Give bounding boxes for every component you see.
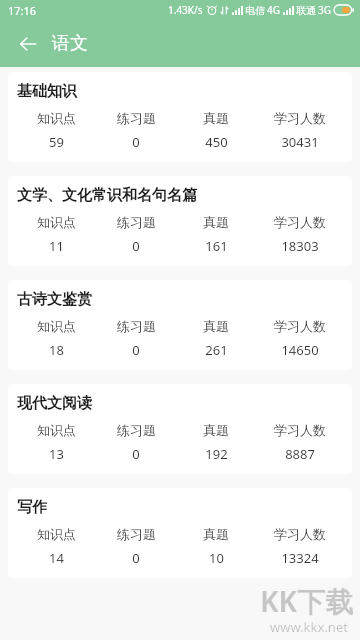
- staticText: 0: [132, 445, 140, 463]
- staticText: 知识点: [37, 526, 76, 542]
- staticText: 4G: [267, 3, 280, 17]
- staticText: 真题: [203, 526, 229, 542]
- staticText: 练习题: [117, 110, 156, 126]
- staticText: 真题: [203, 110, 229, 126]
- staticText: 练习题: [117, 214, 156, 230]
- staticText: 基础知识: [17, 82, 77, 101]
- staticText: 0: [132, 133, 140, 151]
- button[interactable]: 写作: [8, 488, 352, 578]
- staticText: 知识点: [37, 110, 76, 126]
- button[interactable]: 古诗文鉴赏: [8, 280, 352, 370]
- staticText: 古诗文鉴赏: [17, 290, 92, 309]
- staticText: 练习题: [117, 526, 156, 542]
- staticText: 450: [205, 133, 228, 151]
- staticText: 18: [49, 341, 64, 359]
- staticText: 文学、文化常识和名句名篇: [17, 186, 197, 205]
- staticText: KK下载: [260, 582, 354, 620]
- staticText: 真题: [203, 214, 229, 230]
- staticText: 18303: [281, 237, 319, 255]
- staticText: 练习题: [117, 422, 156, 438]
- button[interactable]: 现代文阅读: [8, 384, 352, 474]
- button[interactable]: 文学、文化常识和名句名篇: [8, 176, 352, 266]
- staticText: 学习人数: [274, 422, 326, 438]
- staticText: 学习人数: [274, 214, 326, 230]
- staticText: 知识点: [37, 318, 76, 334]
- staticText: 3G: [318, 3, 331, 17]
- staticText: 59: [49, 133, 64, 151]
- staticText: 0: [132, 549, 140, 567]
- staticText: 13: [49, 445, 64, 463]
- staticText: 13324: [281, 549, 319, 567]
- staticText: 学习人数: [274, 526, 326, 542]
- staticText: 0: [132, 341, 140, 359]
- staticText: 写作: [17, 498, 47, 517]
- staticText: 192: [205, 445, 228, 463]
- staticText: 0: [132, 237, 140, 255]
- staticText: 14650: [281, 341, 319, 359]
- staticText: 261: [205, 341, 228, 359]
- staticText: 161: [205, 237, 228, 255]
- staticText: 11: [49, 237, 64, 255]
- staticText: 真题: [203, 422, 229, 438]
- staticText: 学习人数: [274, 318, 326, 334]
- staticText: 14: [49, 549, 64, 567]
- staticText: 17:16: [8, 3, 37, 18]
- staticText: 知识点: [37, 214, 76, 230]
- button[interactable]: Back: [8, 24, 48, 64]
- staticText: 真题: [203, 318, 229, 334]
- staticText: 练习题: [117, 318, 156, 334]
- staticText: www.kkx.net: [270, 618, 348, 636]
- staticText: 10: [209, 549, 224, 567]
- staticText: 知识点: [37, 422, 76, 438]
- staticText: 电信: [245, 4, 265, 17]
- staticText: 语文: [52, 32, 88, 55]
- staticText: 8887: [285, 445, 315, 463]
- staticText: 现代文阅读: [17, 394, 92, 413]
- staticText: 30431: [281, 133, 319, 151]
- staticText: 联通: [296, 4, 316, 17]
- staticText: 学习人数: [274, 110, 326, 126]
- staticText: 1.43K/s: [168, 3, 203, 17]
- button[interactable]: 基础知识: [8, 72, 352, 162]
